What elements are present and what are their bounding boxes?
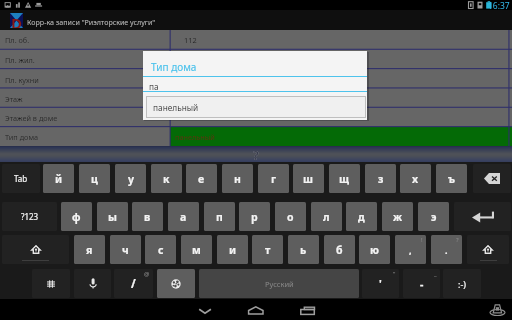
staticText: @ (144, 270, 150, 278)
button[interactable]: Home (233, 299, 279, 320)
button[interactable]: з (365, 164, 396, 193)
button[interactable]: э (418, 202, 449, 231)
button[interactable]: м (181, 235, 212, 264)
button[interactable]: Back (182, 299, 228, 320)
staticText: - (420, 277, 424, 291)
button[interactable]: - (403, 269, 440, 298)
button[interactable]: ъ (436, 164, 467, 193)
staticText: Этаж (5, 94, 23, 104)
staticText: у (128, 172, 134, 186)
staticText: ? (253, 147, 259, 163)
button[interactable]: о (275, 202, 306, 231)
button[interactable]: а (168, 202, 199, 231)
button[interactable]: Shift (2, 235, 69, 264)
button[interactable]: Тип дома (0, 127, 512, 146)
staticText: Тип дома (5, 132, 39, 142)
button[interactable]: , (395, 235, 426, 264)
button[interactable]: :-) (443, 269, 481, 298)
staticText: л (323, 210, 330, 224)
button[interactable]: щ (329, 164, 360, 193)
button[interactable]: ц (79, 164, 110, 193)
staticText: па (149, 81, 159, 92)
staticText: т (265, 243, 271, 257)
button[interactable]: Пл. кухни (0, 70, 512, 89)
button[interactable]: Shift (467, 235, 509, 264)
staticText: э (431, 210, 437, 224)
staticText: Пл. об. (5, 35, 30, 45)
button[interactable]: п (204, 202, 235, 231)
staticText: ? (253, 147, 259, 163)
button[interactable]: й (43, 164, 74, 193)
button[interactable]: е (186, 164, 217, 193)
button[interactable]: Пл. жил. (0, 50, 512, 70)
staticText: Пл. кухни (5, 75, 39, 85)
button[interactable]: я (74, 235, 105, 264)
button[interactable]: Tab (2, 164, 40, 193)
staticText: _ (434, 270, 437, 278)
staticText: р (251, 210, 258, 224)
button[interactable]: Русский (199, 269, 359, 298)
button[interactable]: Пл. об. (0, 30, 512, 50)
button[interactable]: б (324, 235, 355, 264)
button[interactable]: ю (359, 235, 390, 264)
staticText: е (198, 172, 205, 186)
button[interactable]: г (258, 164, 289, 193)
button[interactable]: с (145, 235, 176, 264)
staticText: в (144, 210, 151, 224)
button[interactable]: ж (382, 202, 413, 231)
button[interactable]: т (252, 235, 283, 264)
button[interactable]: Backspace (473, 164, 511, 193)
staticText: п (216, 210, 223, 224)
staticText: и (229, 243, 237, 257)
staticText: панельный (153, 102, 199, 113)
button[interactable]: н (222, 164, 253, 193)
button[interactable]: Keyboard settings (32, 269, 70, 298)
button[interactable]: Этажей в доме (0, 108, 512, 127)
staticText: д (358, 210, 365, 224)
button[interactable]: / (114, 269, 153, 298)
button[interactable]: к (151, 164, 182, 193)
button[interactable]: у (115, 164, 146, 193)
staticText: х (412, 172, 419, 186)
button[interactable]: Change language (157, 269, 195, 298)
staticText: я (86, 243, 93, 257)
staticText: . (445, 244, 448, 256)
staticText: ж (393, 210, 403, 224)
button[interactable]: р (239, 202, 270, 231)
staticText: ю (370, 243, 379, 257)
staticText: 16:37 (488, 0, 510, 10)
button[interactable]: в (132, 202, 163, 231)
staticText: панельный (175, 132, 215, 142)
button[interactable]: х (400, 164, 431, 193)
button[interactable]: ф (61, 202, 92, 231)
button[interactable]: и (217, 235, 248, 264)
button[interactable]: Switch keyboard (489, 303, 507, 317)
staticText: :-) (458, 278, 467, 290)
staticText: ы (108, 210, 117, 224)
staticText: Этажей в доме (5, 113, 58, 123)
staticText: а (180, 210, 187, 224)
button[interactable]: ы (97, 202, 128, 231)
button[interactable]: Enter (454, 202, 511, 231)
staticText: ? (456, 236, 459, 244)
button[interactable]: ш (293, 164, 324, 193)
button[interactable]: ' (362, 269, 399, 298)
staticText: Tab (14, 173, 28, 184)
button[interactable]: Voice input (74, 269, 111, 298)
button[interactable]: ?123 (2, 202, 57, 231)
staticText: г (271, 172, 276, 186)
button[interactable]: панельный (147, 97, 365, 117)
button[interactable]: Recents (285, 299, 331, 320)
staticText: Тип дома (151, 60, 197, 74)
staticText: ч (122, 243, 129, 257)
button[interactable]: л (311, 202, 342, 231)
staticText: з (378, 172, 384, 186)
button[interactable]: д (346, 202, 377, 231)
staticText: Корр-ка записи "Риэлторские услуги" (27, 17, 156, 27)
staticText: " (393, 270, 396, 278)
button[interactable]: ч (110, 235, 141, 264)
button[interactable]: . (431, 235, 462, 264)
staticText: ь (300, 243, 307, 257)
button[interactable]: ь (288, 235, 319, 264)
button[interactable]: Этаж (0, 89, 512, 108)
